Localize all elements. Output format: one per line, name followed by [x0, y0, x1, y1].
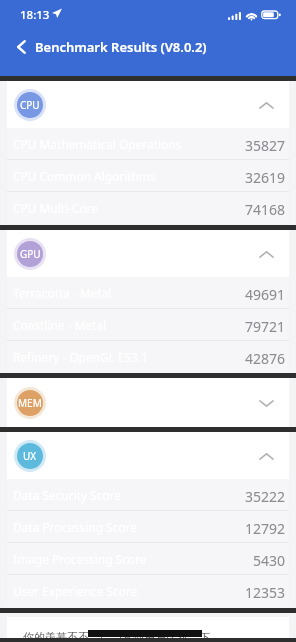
staticText: Refinery - OpenGL ES3.1	[13, 349, 148, 365]
staticText: 12353	[245, 583, 286, 602]
button[interactable]: Terracotta - Metal	[7, 277, 289, 309]
button[interactable]: CPU Mathematical Operations	[7, 128, 289, 160]
staticText: 你的羡慕不不一已与其他用户比对 下	[23, 629, 210, 642]
staticText: 42876	[245, 349, 286, 368]
button[interactable]: Collapse	[247, 230, 285, 277]
button[interactable]: Data Processing Score	[7, 511, 289, 543]
staticText: Coastline - Metal	[13, 317, 107, 333]
button[interactable]: Back	[4, 28, 38, 66]
button[interactable]: Collapse	[247, 81, 285, 128]
staticText: 18:13	[20, 7, 50, 23]
button[interactable]: Refinery - OpenGL ES3.1	[7, 341, 289, 373]
button[interactable]: GPU	[7, 230, 289, 277]
button[interactable]: Collapse	[247, 432, 285, 479]
staticText: CPU Common Algorithms	[13, 168, 156, 184]
staticText: 35222	[245, 487, 286, 506]
button[interactable]: CPU Multi-Core	[7, 192, 289, 224]
button[interactable]: Coastline - Metal	[7, 309, 289, 341]
staticText: 49691	[245, 285, 286, 304]
staticText: 35827	[245, 136, 286, 155]
staticText: Image Processing Score	[13, 551, 147, 567]
staticText: MEM	[18, 396, 42, 410]
button[interactable]: CPU Common Algorithms	[7, 160, 289, 192]
button[interactable]: CPU	[7, 81, 289, 128]
staticText: CPU Mathematical Operations	[13, 136, 182, 152]
staticText: CPU Multi-Core	[13, 200, 98, 216]
staticText: 32619	[245, 168, 286, 187]
button[interactable]: User Experience Score	[7, 575, 289, 607]
staticText: CPU	[20, 98, 40, 112]
staticText: User Experience Score	[13, 583, 138, 599]
staticText: 79721	[245, 317, 286, 336]
staticText: Benchmark Results (V8.0.2)	[35, 38, 207, 56]
staticText: Terracotta - Metal	[13, 285, 112, 301]
staticText: 12792	[245, 519, 286, 538]
staticText: GPU	[20, 247, 41, 261]
button[interactable]: Data Security Score	[7, 479, 289, 511]
button[interactable]: Expand	[247, 378, 285, 427]
button[interactable]: MEM	[7, 378, 289, 427]
staticText: UX	[23, 449, 37, 463]
staticText: 74168	[245, 200, 286, 219]
staticText: Data Processing Score	[13, 519, 137, 535]
button[interactable]: UX	[7, 432, 289, 479]
button[interactable]: Image Processing Score	[7, 543, 289, 575]
staticText: 5430	[253, 551, 286, 570]
staticText: Data Security Score	[13, 487, 121, 503]
